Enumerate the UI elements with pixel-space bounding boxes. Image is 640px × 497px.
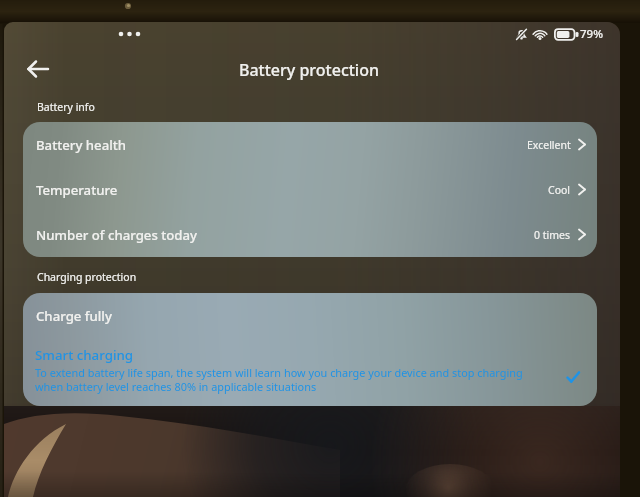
button[interactable]: Smart charging bbox=[23, 339, 597, 406]
button[interactable]: Charge fully bbox=[23, 293, 597, 339]
staticText: Charge fully bbox=[36, 307, 112, 325]
button[interactable]: Back bbox=[18, 49, 58, 89]
button[interactable]: Battery health bbox=[23, 122, 597, 167]
staticText: Battery health bbox=[36, 136, 127, 154]
staticText: Charging protection bbox=[37, 270, 137, 284]
staticText: Cool bbox=[548, 183, 571, 197]
staticText: 79% bbox=[580, 26, 603, 42]
staticText: Excellent bbox=[527, 138, 571, 152]
staticText: Battery info bbox=[37, 100, 95, 114]
staticText: Battery protection bbox=[239, 59, 380, 81]
button[interactable]: Number of charges today bbox=[23, 212, 597, 257]
staticText: To extend battery life span, the system … bbox=[35, 365, 535, 395]
staticText: 0 times bbox=[534, 228, 571, 242]
staticText: Temperature bbox=[36, 181, 118, 199]
staticText: Number of charges today bbox=[36, 226, 198, 244]
other: Selected bbox=[566, 370, 580, 384]
staticText: Smart charging bbox=[35, 346, 134, 364]
button[interactable]: Temperature bbox=[23, 167, 597, 212]
